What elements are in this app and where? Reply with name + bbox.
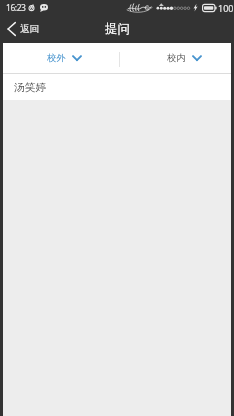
button[interactable]: 校外 bbox=[47, 47, 82, 69]
staticText: 校外 bbox=[47, 52, 66, 64]
button[interactable]: 返回 bbox=[0, 15, 47, 43]
button[interactable]: 校内 bbox=[167, 47, 202, 69]
staticText: 返回 bbox=[20, 23, 39, 35]
staticText: 校内 bbox=[167, 52, 186, 64]
staticText: 100 bbox=[218, 2, 234, 14]
button[interactable]: 汤笑婷 bbox=[3, 74, 231, 100]
staticText: 汤笑婷 bbox=[14, 81, 47, 95]
staticText: 提问 bbox=[105, 21, 130, 37]
staticText: 16:23 bbox=[6, 2, 26, 14]
